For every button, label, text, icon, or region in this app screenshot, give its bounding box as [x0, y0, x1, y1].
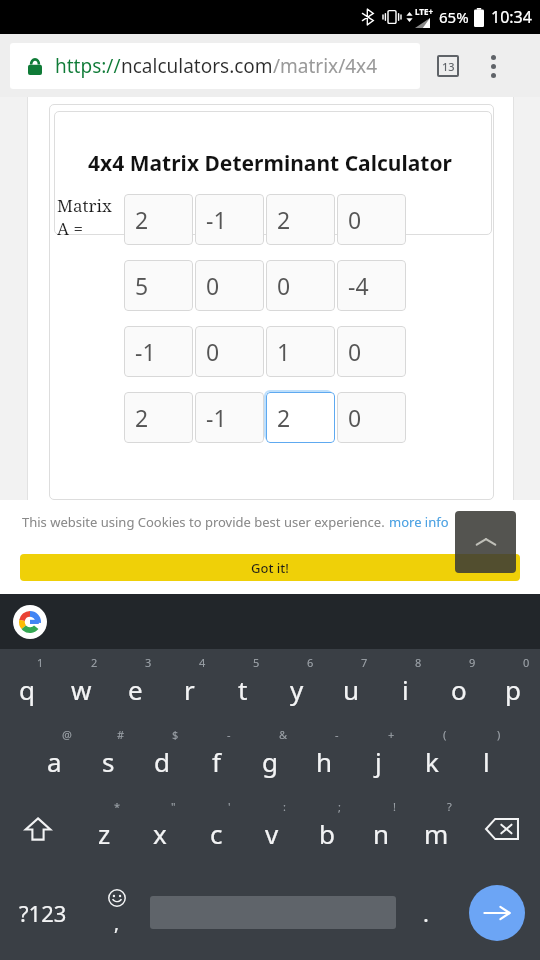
button[interactable]: " [132, 793, 188, 865]
staticText: -1 [135, 336, 156, 367]
button[interactable]: -4 [337, 260, 406, 311]
staticText: d [154, 744, 170, 779]
button[interactable]: 8 [378, 649, 432, 721]
staticText: # [117, 727, 125, 742]
button[interactable]: 3 [108, 649, 162, 721]
button[interactable]: 5 [216, 649, 270, 721]
staticText: k [425, 744, 439, 779]
button[interactable]: 2 [124, 392, 193, 443]
staticText: r [184, 672, 195, 707]
button[interactable]: 7 [324, 649, 378, 721]
button[interactable]: Google search [12, 604, 48, 640]
button[interactable]: - [297, 721, 351, 793]
button[interactable]: 1 [266, 326, 335, 377]
button[interactable]: ?123 [0, 865, 86, 960]
button[interactable]: 0 [195, 260, 264, 311]
button[interactable]: more info [389, 513, 449, 531]
staticText: 1 [37, 655, 44, 670]
staticText: ?123 [19, 898, 67, 928]
staticText: more info [389, 513, 449, 531]
button[interactable]: -1 [195, 392, 264, 443]
button[interactable]: & [243, 721, 297, 793]
staticText: 0 [348, 204, 362, 235]
button[interactable]: Shift [0, 793, 76, 865]
button[interactable]: 9 [432, 649, 486, 721]
staticText: ; [338, 799, 341, 814]
staticText: 0 [206, 336, 220, 367]
button[interactable]: . [398, 865, 454, 960]
button[interactable]: Backspace [464, 793, 540, 865]
staticText: 2 [277, 204, 291, 235]
staticText: f [212, 744, 221, 779]
button[interactable]: ) [459, 721, 513, 793]
button[interactable]: # [81, 721, 135, 793]
button[interactable]: 1 [0, 649, 54, 721]
button[interactable]: ' [188, 793, 244, 865]
button[interactable]: @ [27, 721, 81, 793]
staticText: 2 [135, 402, 149, 433]
button[interactable]: ! [354, 793, 409, 865]
staticText: o [451, 672, 467, 707]
staticText: , [114, 910, 120, 936]
staticText: 4 [199, 655, 206, 670]
staticText: : [283, 799, 286, 814]
staticText: /matrix/4x4 [273, 53, 378, 79]
staticText: - [335, 727, 339, 742]
staticText: i [402, 672, 409, 707]
staticText: j [375, 744, 382, 779]
button[interactable]: 0 [337, 194, 406, 245]
button[interactable]: Emoji [86, 865, 148, 960]
staticText: - [227, 727, 231, 742]
button[interactable]: Enter [469, 885, 525, 941]
staticText: ) [497, 727, 501, 742]
button[interactable]: : [244, 793, 299, 865]
button[interactable]: $ [135, 721, 189, 793]
button[interactable]: 0 [337, 326, 406, 377]
button[interactable]: ? [409, 793, 464, 865]
button[interactable]: 2 [266, 392, 335, 443]
button[interactable]: -1 [195, 194, 264, 245]
button[interactable]: More options [476, 49, 510, 83]
staticText: 7 [361, 655, 368, 670]
button[interactable]: ( [405, 721, 459, 793]
staticText: -1 [206, 402, 227, 433]
button[interactable]: 2 [124, 194, 193, 245]
button[interactable]: - [189, 721, 243, 793]
staticText: 5 [253, 655, 260, 670]
button[interactable]: 0 [337, 392, 406, 443]
button[interactable]: 4 [162, 649, 216, 721]
staticText: 0 [206, 270, 220, 301]
staticText: s [102, 744, 115, 779]
button[interactable]: https:// [10, 43, 420, 89]
button[interactable]: 0 [195, 326, 264, 377]
staticText: v [265, 816, 279, 851]
staticText: ncalculators.com [121, 53, 273, 79]
staticText: 2 [277, 402, 291, 433]
button[interactable]: 0 [266, 260, 335, 311]
button[interactable]: Tabs [432, 50, 464, 82]
button[interactable]: 2 [266, 194, 335, 245]
staticText: https:// [55, 53, 121, 79]
staticText: p [505, 672, 521, 707]
button[interactable]: Scroll to top [455, 511, 516, 573]
button[interactable]: 6 [270, 649, 324, 721]
staticText: ! [393, 799, 396, 814]
button[interactable]: 5 [124, 260, 193, 311]
staticText: 0 [523, 655, 530, 670]
staticText: + [388, 727, 395, 742]
staticText: 2 [91, 655, 98, 670]
staticText: a [47, 744, 62, 779]
button[interactable]: -1 [124, 326, 193, 377]
button[interactable]: * [76, 793, 132, 865]
staticText: * [114, 799, 121, 814]
staticText: w [71, 672, 92, 707]
button[interactable]: + [351, 721, 405, 793]
staticText: z [98, 816, 111, 851]
button[interactable]: Got it! [20, 554, 520, 581]
staticText: x [153, 816, 167, 851]
button[interactable]: ; [299, 793, 354, 865]
staticText: 1 [277, 336, 291, 367]
button[interactable]: 2 [54, 649, 108, 721]
button[interactable]: 0 [486, 649, 540, 721]
